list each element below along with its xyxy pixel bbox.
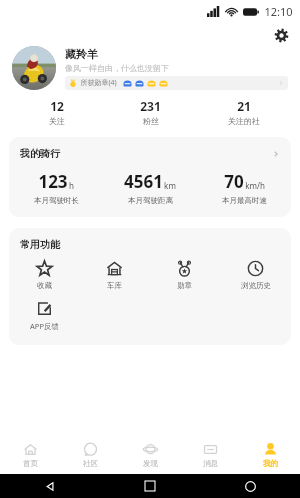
staticText: 发现 [143, 459, 158, 468]
staticText: 社区 [83, 459, 98, 468]
staticText: 本月驾驶时长 [34, 196, 79, 205]
staticText: 浏览历史 [241, 281, 271, 290]
staticText: 像风一样自由，什么也没留下 [65, 63, 169, 73]
staticText: 关注 [49, 116, 65, 126]
button[interactable]: 123 [9, 170, 103, 205]
staticText: 所获勋章(4) [80, 78, 117, 88]
staticText: km [164, 180, 176, 191]
staticText: 4561 [124, 170, 163, 193]
button[interactable]: 社区 [60, 436, 120, 474]
staticText: km/h [245, 180, 265, 191]
button[interactable]: 所获勋章(4) [65, 76, 288, 90]
button[interactable]: 首页 [0, 436, 60, 474]
button[interactable]: 车库 [79, 260, 149, 290]
button[interactable]: 收藏 [9, 260, 79, 290]
button[interactable]: 12 [10, 98, 104, 126]
button[interactable]: 消息 [180, 436, 240, 474]
button[interactable]: 发现 [120, 436, 180, 474]
staticText: 本月驾驶距离 [128, 196, 173, 205]
staticText: 常用功能 [20, 238, 60, 251]
staticText: h [69, 180, 74, 191]
button[interactable]: APP反馈 [9, 300, 79, 331]
staticText: APP反馈 [30, 321, 59, 331]
staticText: 我的骑行 [20, 147, 60, 160]
button[interactable]: 藏羚羊 [12, 46, 288, 90]
button[interactable]: 勋章 [149, 260, 220, 290]
button[interactable]: 4561 [103, 170, 197, 205]
button[interactable]: 70 [197, 170, 291, 205]
button[interactable]: 21 [197, 98, 290, 126]
button[interactable]: 我的骑行 [9, 147, 291, 160]
button[interactable]: 我的 [240, 436, 300, 474]
staticText: 消息 [203, 459, 218, 468]
staticText: 123 [38, 170, 68, 193]
staticText: 12:10 [264, 4, 293, 19]
staticText: 首页 [23, 459, 38, 468]
button[interactable]: 浏览历史 [220, 260, 291, 290]
staticText: 本月最高时速 [222, 196, 267, 205]
staticText: 收藏 [37, 281, 52, 290]
staticText: 231 [140, 98, 161, 114]
button[interactable]: Settings [270, 24, 292, 46]
staticText: 12 [50, 98, 64, 114]
staticText: 粉丝 [143, 116, 159, 126]
staticText: 关注的社 [228, 116, 260, 126]
staticText: 21 [237, 98, 251, 114]
button[interactable]: 231 [104, 98, 197, 126]
staticText: 勋章 [177, 281, 192, 290]
staticText: 车库 [107, 281, 122, 290]
staticText: 我的 [263, 459, 278, 468]
staticText: 70 [224, 170, 244, 193]
staticText: 藏羚羊 [65, 47, 98, 61]
